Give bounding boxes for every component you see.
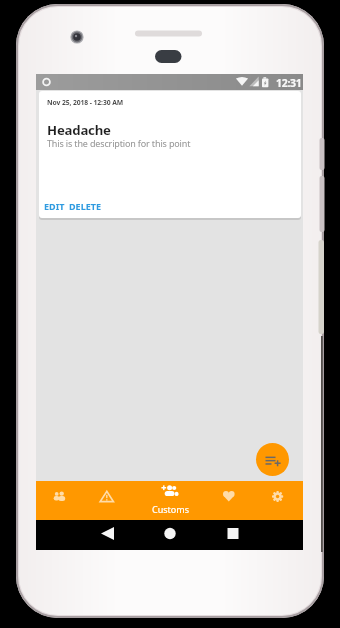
button[interactable] <box>216 522 250 547</box>
button[interactable]: EDIT <box>44 200 65 212</box>
staticText: 12:31 <box>276 76 302 90</box>
staticText: Nov 25, 2018 - 12:30 AM <box>47 98 124 107</box>
button[interactable]: Nov 25, 2018 - 12:30 AM <box>39 91 301 218</box>
staticText: Headache <box>47 121 111 139</box>
button[interactable] <box>36 481 84 520</box>
button[interactable]: DELETE <box>69 200 101 212</box>
button[interactable] <box>207 481 255 520</box>
button[interactable] <box>256 443 289 476</box>
button[interactable] <box>153 522 187 547</box>
staticText: Customs <box>152 503 189 515</box>
staticText: EDIT <box>44 200 65 212</box>
button[interactable] <box>255 481 303 520</box>
button[interactable] <box>84 481 132 520</box>
button[interactable] <box>91 522 125 547</box>
staticText: This is the description for this point <box>47 137 191 149</box>
button[interactable] <box>132 481 207 520</box>
staticText: DELETE <box>69 200 101 212</box>
